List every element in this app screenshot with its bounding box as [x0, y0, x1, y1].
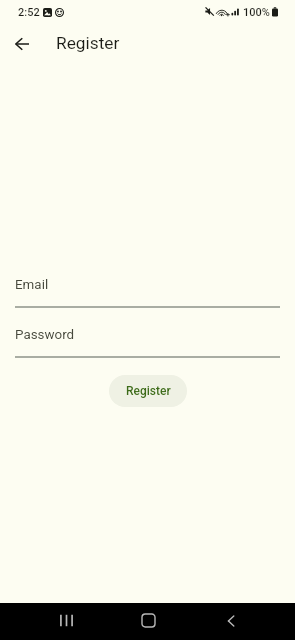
staticText: Email — [15, 277, 49, 293]
button[interactable]: Back — [2, 24, 42, 64]
button[interactable]: Home — [128, 602, 168, 639]
staticText: Register — [56, 33, 120, 53]
button[interactable]: Recents — [44, 602, 84, 639]
staticText: 2:52 — [18, 6, 40, 19]
button[interactable]: Back — [211, 602, 251, 639]
staticText: 100% — [243, 6, 270, 19]
staticText: Register — [126, 384, 171, 398]
button[interactable]: Register — [109, 375, 187, 407]
staticText: Password — [15, 327, 75, 343]
